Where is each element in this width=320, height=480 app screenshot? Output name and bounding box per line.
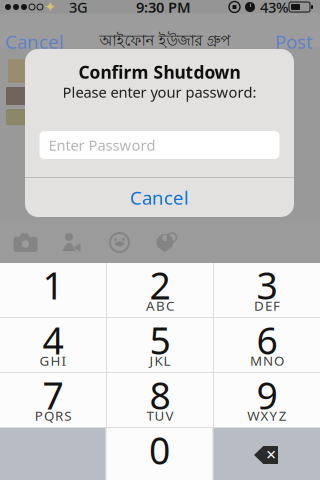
staticText: GHI: [39, 352, 67, 369]
button[interactable]: 6: [214, 318, 320, 372]
staticText: 0: [149, 425, 170, 475]
button[interactable]: 1: [0, 263, 106, 317]
button[interactable]: Tag People: [49, 223, 96, 261]
staticText: 9: [256, 370, 277, 420]
staticText: 7: [42, 370, 63, 420]
staticText: 6: [256, 315, 277, 365]
staticText: TUV: [146, 407, 174, 424]
button[interactable]: Cancel: [0, 13, 80, 50]
staticText: 2: [149, 260, 170, 310]
staticText: 4: [42, 315, 63, 365]
button[interactable]: 4: [0, 318, 106, 372]
button[interactable]: Delete: [213, 428, 320, 480]
staticText: ✦: [44, 0, 56, 15]
staticText: JKL: [149, 352, 171, 369]
staticText: 3: [256, 260, 277, 310]
staticText: আইফোন ইউজার গ্রুপ: [99, 31, 230, 52]
button[interactable]: Post: [0, 13, 315, 50]
staticText: Post: [275, 29, 313, 54]
staticText: MNO: [250, 352, 284, 369]
staticText: PQRS: [35, 407, 71, 424]
button[interactable]: Cancel: [25, 178, 294, 217]
staticText: 3G: [69, 0, 88, 17]
button[interactable]: 0: [106, 428, 212, 480]
staticText: Please enter your password:: [62, 82, 256, 102]
button[interactable]: Check In: [143, 223, 190, 261]
button[interactable]: 9: [214, 373, 320, 427]
button[interactable]: Photo: [2, 223, 49, 261]
staticText: ABC: [146, 297, 174, 314]
staticText: Confirm Shutdown: [78, 60, 240, 83]
staticText: Enter Password: [48, 135, 155, 155]
staticText: 1: [42, 260, 63, 310]
staticText: ✕: [265, 447, 276, 462]
staticText: WXYZ: [247, 407, 287, 424]
button[interactable]: 3: [214, 263, 320, 317]
staticText: 8: [149, 370, 170, 420]
button[interactable]: 5: [107, 318, 213, 372]
staticText: Cancel: [130, 185, 189, 210]
button[interactable]: Feeling: [96, 223, 143, 261]
staticText: আমার মন ভালো না । আমি কথা: [56, 197, 241, 218]
button[interactable]: 8: [107, 373, 213, 427]
staticText: 9:30 PM: [136, 0, 191, 17]
button[interactable]: 7: [0, 373, 106, 427]
staticText: 5: [149, 315, 170, 365]
staticText: Cancel: [5, 29, 64, 54]
staticText: DEF: [254, 297, 280, 314]
staticText: 43%: [260, 0, 288, 17]
button[interactable]: 2: [107, 263, 213, 317]
